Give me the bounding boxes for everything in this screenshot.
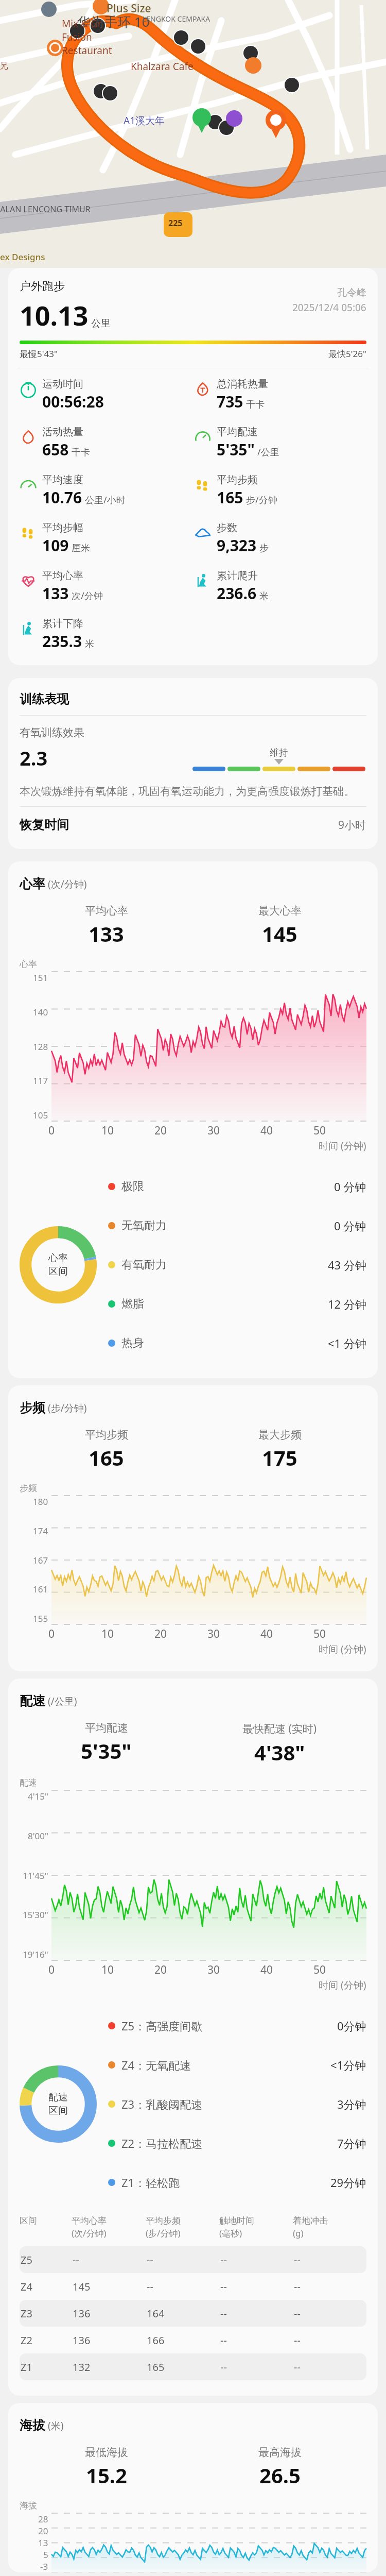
staticText: 28 <box>38 2513 48 2525</box>
staticText: Z1：轻松跑 <box>121 2175 180 2190</box>
staticText: 步/分钟 <box>246 494 277 506</box>
button[interactable]: 总消耗热量 <box>193 378 367 412</box>
staticText: 166 <box>147 2333 219 2347</box>
staticText: 2.3 <box>20 744 48 771</box>
staticText: 米 <box>259 590 269 602</box>
staticText: 时间 (分钟) <box>319 1139 366 1153</box>
staticText: 华为手环 10 <box>77 12 150 31</box>
staticText: 心率 区间 <box>48 1252 68 1278</box>
button[interactable]: 平均步频 <box>193 473 367 508</box>
staticText: 8'00" <box>28 1830 48 1842</box>
staticText: 9小时 <box>338 818 366 833</box>
staticText: -- <box>220 2333 293 2347</box>
staticText: 0 分钟 <box>334 1179 366 1194</box>
staticText: 175 <box>262 1444 297 1471</box>
staticText: 11'45" <box>23 1870 48 1882</box>
staticText: 30 <box>207 1123 260 1138</box>
button[interactable]: 极限 <box>108 1167 366 1206</box>
staticText: 20 <box>38 2525 48 2537</box>
staticText: 公里 <box>91 317 111 330</box>
button[interactable]: 累计爬升 <box>193 569 367 604</box>
staticText: 5'35" <box>217 439 255 460</box>
button[interactable]: 恢复时间 <box>20 817 366 833</box>
button[interactable]: 运动时间 <box>19 378 193 412</box>
staticText: 180 <box>33 1496 48 1507</box>
staticText: (/公里) <box>48 1694 77 1708</box>
staticText: 3分钟 <box>337 2096 366 2112</box>
staticText: 00:56:28 <box>42 391 104 412</box>
button[interactable]: 累计下降 <box>19 617 193 652</box>
button[interactable]: Z1：轻松跑 <box>108 2163 366 2202</box>
button[interactable]: 平均配速 <box>193 426 367 460</box>
staticText: -- <box>220 2307 293 2320</box>
staticText: 43 分钟 <box>328 1257 366 1273</box>
staticText: <1分钟 <box>330 2057 366 2073</box>
button[interactable]: 热身 <box>108 1324 366 1363</box>
staticText: 9,323 <box>217 535 257 556</box>
button[interactable]: 无氧耐力 <box>108 1206 366 1245</box>
staticText: 50 <box>313 1123 366 1138</box>
staticText: 步频 <box>20 1483 37 1494</box>
staticText: 最低海拔 <box>85 2446 128 2459</box>
button[interactable]: 平均心率 <box>19 569 193 604</box>
staticText: 133 <box>42 583 69 604</box>
button[interactable]: Z4 <box>20 2273 366 2300</box>
button[interactable]: Z4：无氧配速 <box>108 2045 366 2084</box>
staticText: /公里 <box>257 446 279 459</box>
staticText: 最快5'26" <box>328 348 366 360</box>
staticText: 40 <box>260 1962 313 1977</box>
staticText: 132 <box>73 2360 146 2374</box>
button[interactable]: Z2：马拉松配速 <box>108 2124 366 2163</box>
staticText: -- <box>220 2253 293 2267</box>
staticText: 步频 <box>20 1400 45 1416</box>
staticText: 总消耗热量 <box>217 378 268 391</box>
button[interactable]: Z3：乳酸阈配速 <box>108 2084 366 2124</box>
staticText: 步 <box>259 543 269 554</box>
staticText: 户外跑步 <box>20 279 65 294</box>
staticText: 平均配速 <box>85 1721 128 1735</box>
button[interactable]: Z3 <box>20 2300 366 2327</box>
staticText: 最大心率 <box>258 904 302 918</box>
staticText: 20 <box>154 1123 207 1138</box>
staticText: 161 <box>33 1583 48 1595</box>
staticText: 105 <box>33 1109 48 1121</box>
button[interactable]: 活动热量 <box>19 426 193 460</box>
staticText: (次/分钟) <box>48 877 87 891</box>
staticText: 平均配速 <box>217 426 258 438</box>
staticText: -- <box>220 2280 293 2294</box>
button[interactable]: Z1 <box>20 2353 366 2380</box>
staticText: 15.2 <box>86 2461 127 2489</box>
staticText: 最大步频 <box>258 1428 302 1442</box>
staticText: 平均速度 <box>42 473 83 486</box>
staticText: 心率 <box>20 876 45 892</box>
staticText: 平均心率 <box>42 569 83 582</box>
staticText: 次/分钟 <box>72 589 103 602</box>
button[interactable]: Z2 <box>20 2327 366 2353</box>
staticText: 165 <box>147 2360 219 2374</box>
staticText: 236.6 <box>217 583 257 604</box>
button[interactable]: 步数 <box>193 521 367 556</box>
staticText: 配速 <box>20 1693 45 1709</box>
button[interactable]: 平均速度 <box>19 473 193 508</box>
staticText: 29分钟 <box>330 2175 366 2190</box>
button[interactable]: Route map <box>0 0 386 268</box>
button[interactable]: 平均步幅 <box>19 521 193 556</box>
staticText: 225 <box>168 217 183 229</box>
staticText: 4'15" <box>28 1790 48 1802</box>
staticText: 孔令峰 <box>337 286 366 299</box>
staticText: 区间 <box>20 2215 72 2226</box>
staticText: 时间 (分钟) <box>319 1978 366 1992</box>
staticText: 20 <box>154 1962 207 1977</box>
staticText: 155 <box>33 1613 48 1624</box>
staticText: -- <box>294 2360 366 2374</box>
staticText: 恢复时间 <box>20 817 69 833</box>
staticText: 128 <box>33 1041 48 1053</box>
staticText: 10.76 <box>42 487 82 508</box>
button[interactable]: 燃脂 <box>108 1284 366 1324</box>
button[interactable]: Z5 <box>20 2246 366 2273</box>
staticText: 0 <box>48 1123 101 1138</box>
button[interactable]: Z5：高强度间歇 <box>108 2006 366 2045</box>
staticText: 10 <box>101 1962 154 1977</box>
staticText: Z3 <box>21 2307 72 2320</box>
button[interactable]: 有氧耐力 <box>108 1245 366 1284</box>
